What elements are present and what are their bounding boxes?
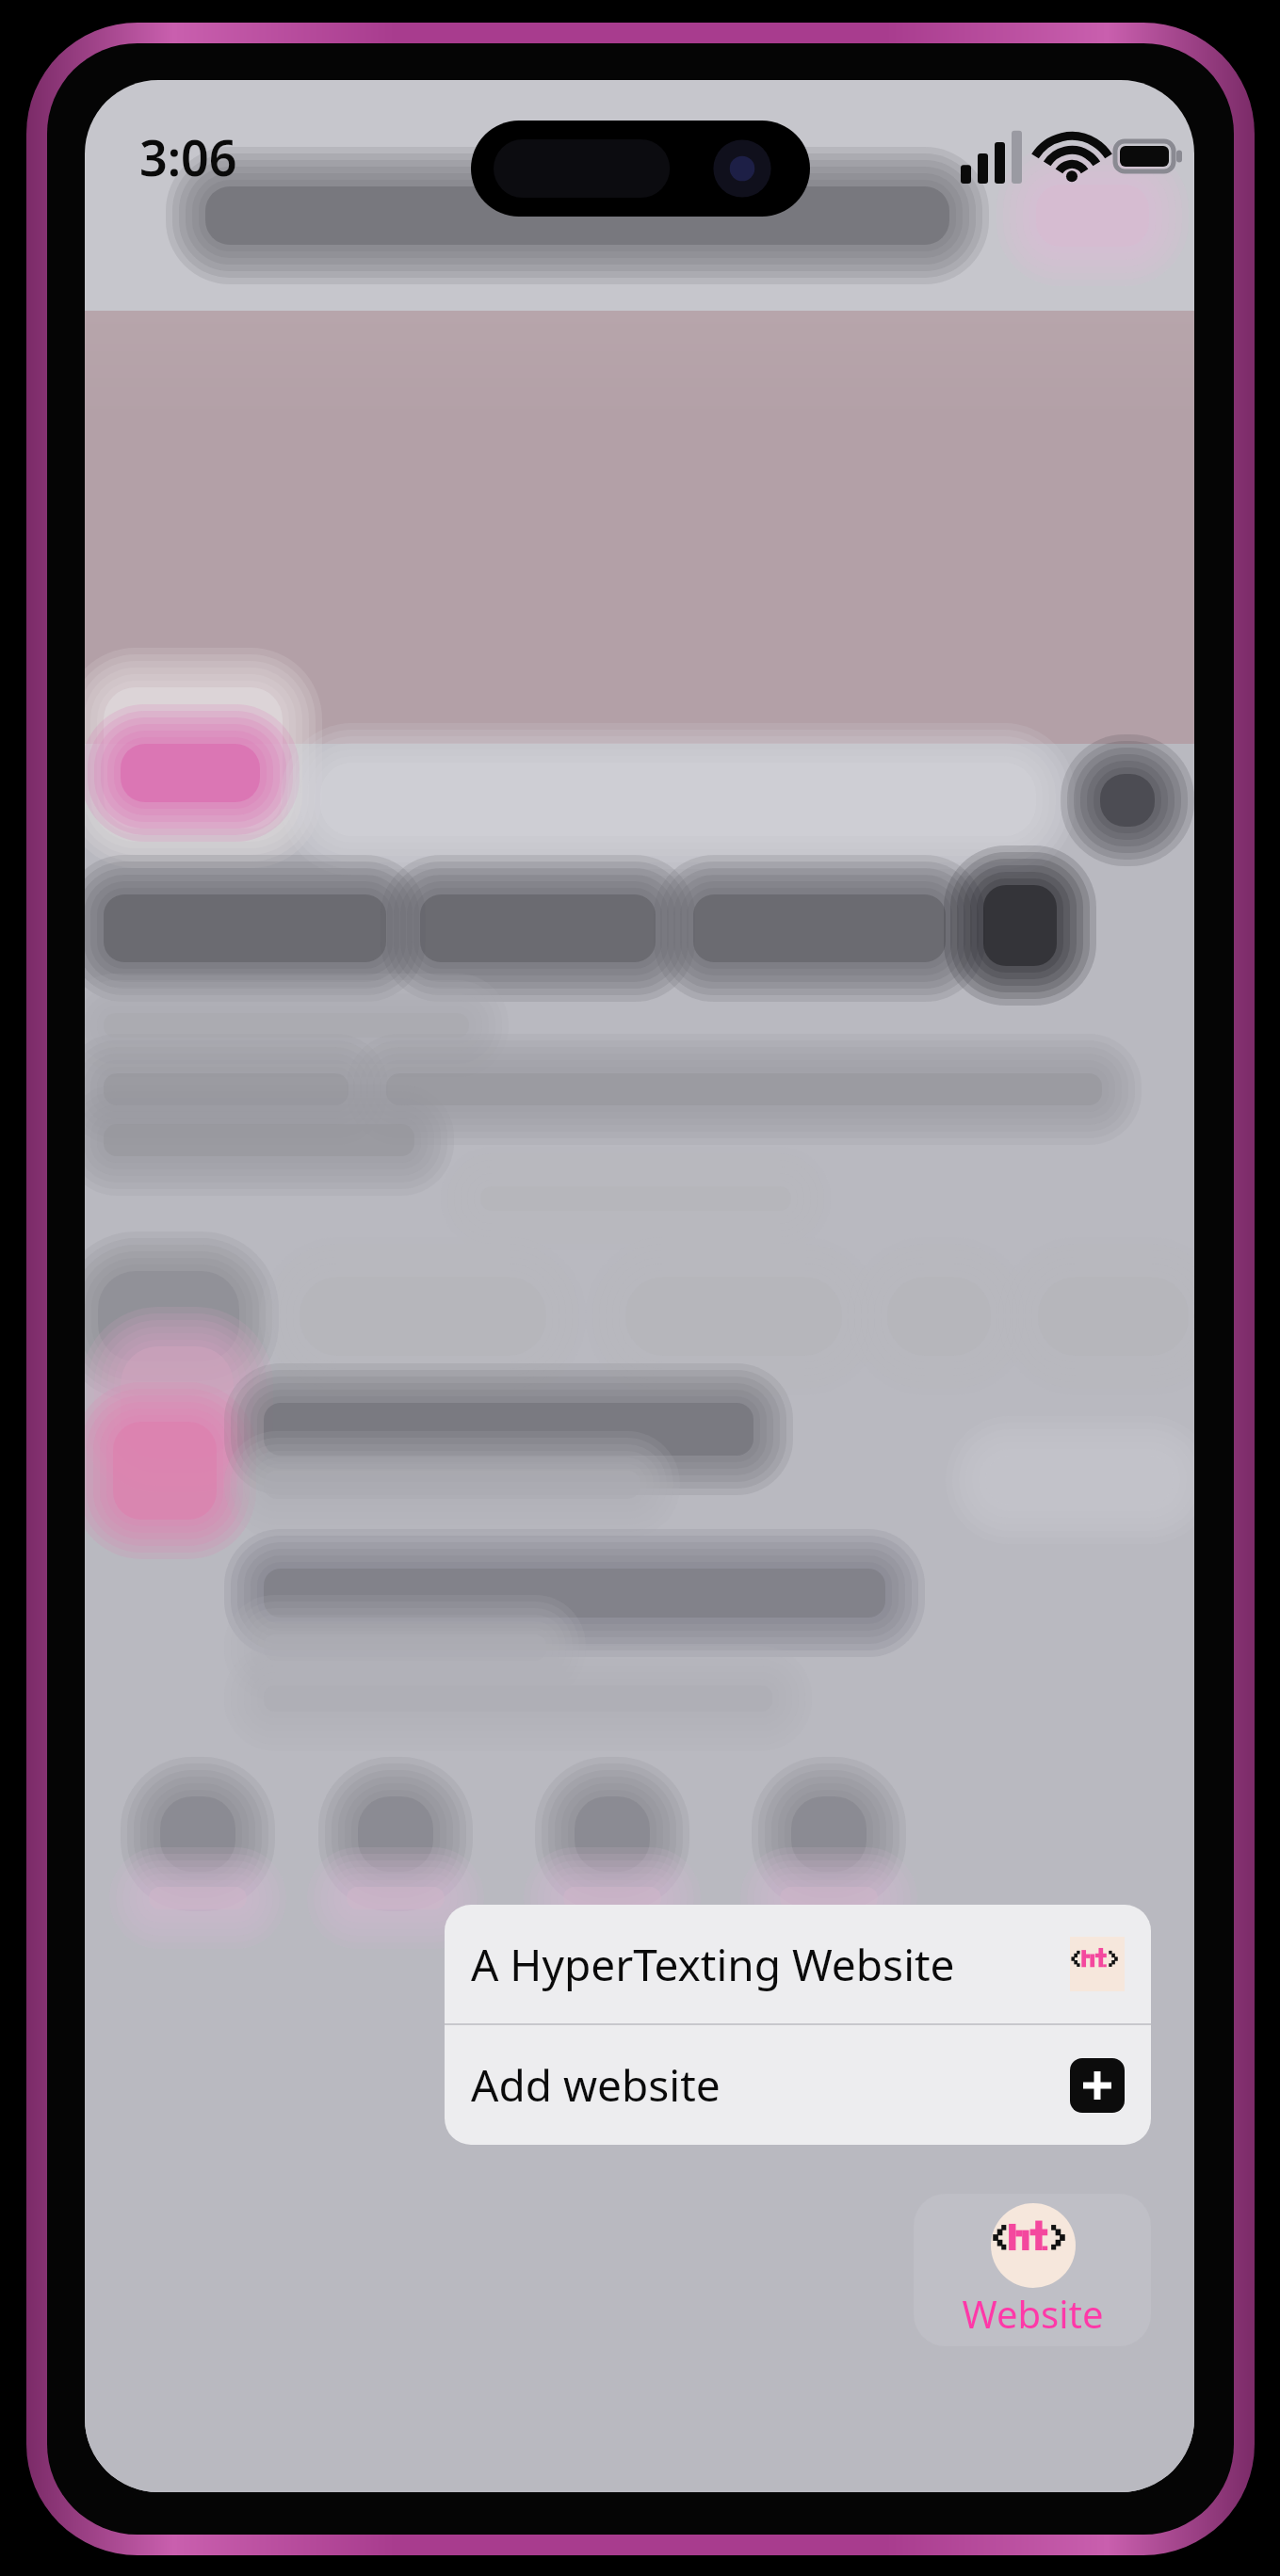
button[interactable]: A HyperTexting Website [445, 1905, 1151, 2023]
staticText: Website [962, 2288, 1104, 2339]
staticText: A HyperTexting Website [471, 1935, 1070, 1994]
staticText: Add website [471, 2055, 1070, 2115]
button[interactable]: Website [914, 2194, 1151, 2346]
staticText: 3:06 [139, 123, 237, 190]
button[interactable]: Add website [445, 2025, 1151, 2145]
